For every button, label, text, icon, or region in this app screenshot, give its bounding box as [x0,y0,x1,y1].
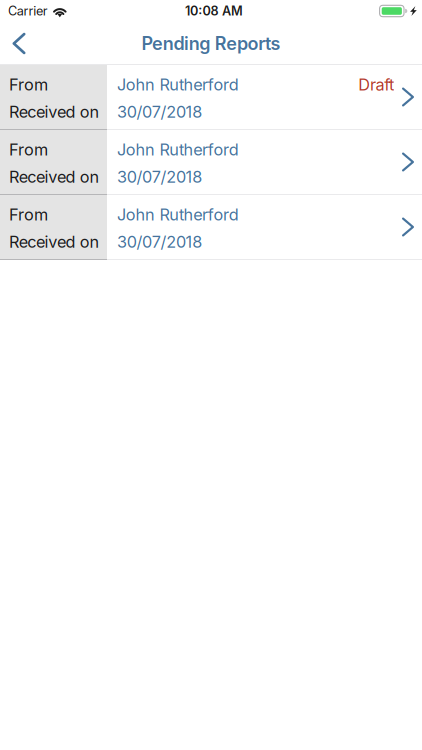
staticText: John Rutherford [117,75,239,94]
staticText: Received on [9,102,99,122]
staticText: Draft [358,75,394,94]
staticText: Received on [9,232,99,252]
staticText: Carrier [8,3,48,19]
button[interactable]: From [0,65,422,129]
staticText: John Rutherford [117,205,239,224]
staticText: 30/07/2018 [117,232,202,252]
button[interactable]: From [0,195,422,259]
button[interactable]: From [0,130,422,194]
staticText: 10:08 AM [185,3,243,19]
staticText: Received on [9,167,99,187]
staticText: From [9,140,48,159]
staticText: Pending Reports [141,33,280,54]
staticText: From [9,75,48,94]
staticText: 30/07/2018 [117,167,202,187]
staticText: From [9,205,48,224]
staticText: John Rutherford [117,140,239,159]
button[interactable]: Back [0,23,41,64]
staticText: 30/07/2018 [117,102,202,122]
